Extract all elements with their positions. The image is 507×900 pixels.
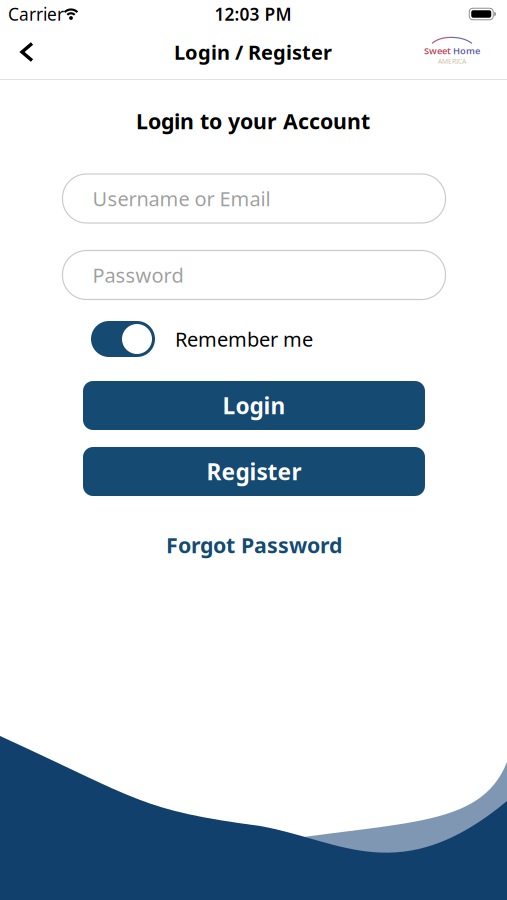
staticText: Remember me xyxy=(175,326,313,352)
staticText: Sweet xyxy=(424,44,451,57)
button[interactable]: Forgot Password xyxy=(166,531,342,559)
staticText: Carrier xyxy=(8,2,64,25)
button[interactable]: Password xyxy=(62,250,445,299)
staticText: Forgot Password xyxy=(166,531,342,559)
staticText: Username or Email xyxy=(92,185,270,212)
button[interactable]: Remember me xyxy=(91,321,155,357)
staticText: Login / Register xyxy=(174,39,332,65)
button[interactable]: Login xyxy=(83,381,425,430)
staticText: Password xyxy=(92,262,183,288)
button[interactable]: Back xyxy=(11,35,42,68)
staticText: AMERICA xyxy=(438,57,466,66)
staticText: Register xyxy=(206,456,301,486)
button[interactable]: Register xyxy=(83,447,425,496)
staticText: Login xyxy=(222,390,285,420)
staticText: Home xyxy=(453,44,480,57)
button[interactable]: Username or Email xyxy=(62,174,445,223)
staticText: Login to your Account xyxy=(136,107,370,135)
staticText: 12:03 PM xyxy=(214,2,291,25)
